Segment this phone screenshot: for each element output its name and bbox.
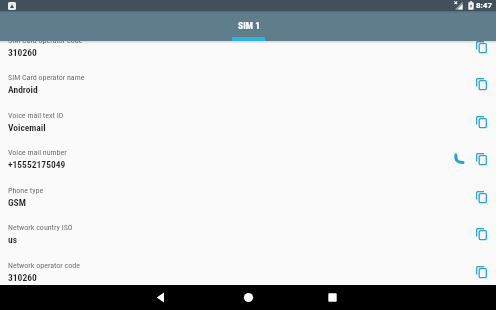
staticText: Voice mail number: [8, 148, 67, 157]
staticText: +15552175049: [8, 159, 66, 170]
staticText: 8:47: [476, 1, 493, 10]
staticText: Network operator code: [8, 261, 80, 270]
button[interactable]: [476, 41, 487, 53]
button[interactable]: [476, 191, 487, 203]
staticText: GSM: [8, 197, 26, 208]
button[interactable]: [236, 285, 261, 310]
button[interactable]: [476, 116, 487, 128]
button[interactable]: Network country ISO: [0, 225, 496, 263]
button[interactable]: [148, 285, 173, 310]
staticText: SIM Card operator code: [8, 41, 83, 45]
staticText: Network country ISO: [8, 223, 73, 232]
button[interactable]: [476, 153, 487, 165]
button[interactable]: SIM Card operator code: [0, 41, 496, 76]
button[interactable]: Phone type: [0, 188, 496, 226]
staticText: Voice mail text ID: [8, 111, 64, 120]
staticText: 310260: [8, 272, 37, 283]
button[interactable]: [320, 285, 345, 310]
staticText: SIM Card operator name: [8, 73, 85, 82]
button[interactable]: SIM 1: [232, 20, 265, 41]
button[interactable]: [476, 266, 487, 278]
button[interactable]: [476, 228, 487, 240]
button[interactable]: [453, 153, 465, 165]
staticText: Voicemail: [8, 122, 46, 133]
button[interactable]: Network operator code: [0, 263, 496, 285]
button[interactable]: [476, 78, 487, 90]
staticText: 310260: [8, 47, 37, 58]
staticText: SIM 1: [238, 20, 260, 31]
button[interactable]: Voice mail text ID: [0, 113, 496, 151]
button[interactable]: Voice mail number: [0, 150, 496, 188]
staticText: Phone type: [8, 186, 44, 195]
button[interactable]: SIM Card operator name: [0, 75, 496, 113]
staticText: Android: [8, 84, 38, 95]
staticText: us: [8, 234, 17, 245]
